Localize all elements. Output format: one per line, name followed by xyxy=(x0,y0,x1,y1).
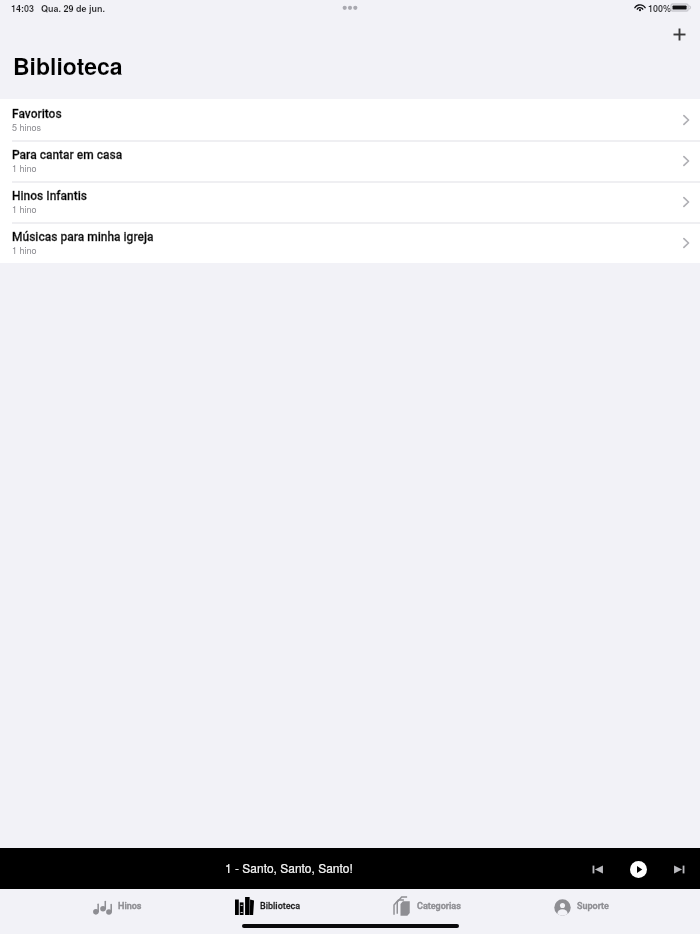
staticText: Hinos Infantis xyxy=(12,189,88,203)
button[interactable]: Músicas para minha igreja xyxy=(0,222,700,263)
staticText: Favoritos xyxy=(12,107,62,121)
staticText: Biblioteca xyxy=(260,901,301,912)
staticText: 100% xyxy=(648,2,672,15)
staticText: 5 hinos xyxy=(12,121,42,134)
staticText: Biblioteca xyxy=(260,901,301,912)
button[interactable]: Adicionar xyxy=(665,20,693,48)
button[interactable]: Para cantar em casa xyxy=(0,140,700,181)
staticText: Suporte xyxy=(577,901,609,912)
button[interactable]: Favoritos xyxy=(0,99,700,140)
staticText: Categorias xyxy=(417,901,461,912)
button[interactable]: Próxima xyxy=(665,855,693,883)
staticText: 1 hino xyxy=(12,244,37,257)
staticText: Hinos xyxy=(118,901,142,912)
button[interactable]: Suporte xyxy=(509,889,664,923)
button[interactable]: Hinos Infantis xyxy=(0,181,700,222)
staticText: Suporte xyxy=(577,901,609,912)
staticText: 1 - Santo, Santo, Santo! xyxy=(225,859,353,876)
staticText: Músicas para minha igreja xyxy=(12,230,154,244)
staticText: Hinos Infantis xyxy=(12,189,88,203)
staticText: Qua. 29 de jun. xyxy=(41,2,106,15)
staticText: Categorias xyxy=(417,901,461,912)
staticText: Para cantar em casa xyxy=(12,148,123,162)
staticText: Músicas para minha igreja xyxy=(12,230,154,244)
staticText: Hinos xyxy=(118,901,142,912)
staticText: Para cantar em casa xyxy=(12,148,123,162)
staticText: 1 hino xyxy=(12,162,37,175)
staticText: 1 hino xyxy=(12,203,37,216)
staticText: Favoritos xyxy=(12,107,62,121)
button[interactable]: Hinos xyxy=(40,889,195,923)
button[interactable]: Biblioteca xyxy=(195,889,350,923)
button[interactable]: Categorias xyxy=(352,889,507,923)
staticText: Biblioteca xyxy=(13,49,123,82)
staticText: 14:03 xyxy=(11,2,35,15)
button[interactable]: Reproduzir xyxy=(624,855,652,883)
button[interactable]: Anterior xyxy=(583,855,611,883)
